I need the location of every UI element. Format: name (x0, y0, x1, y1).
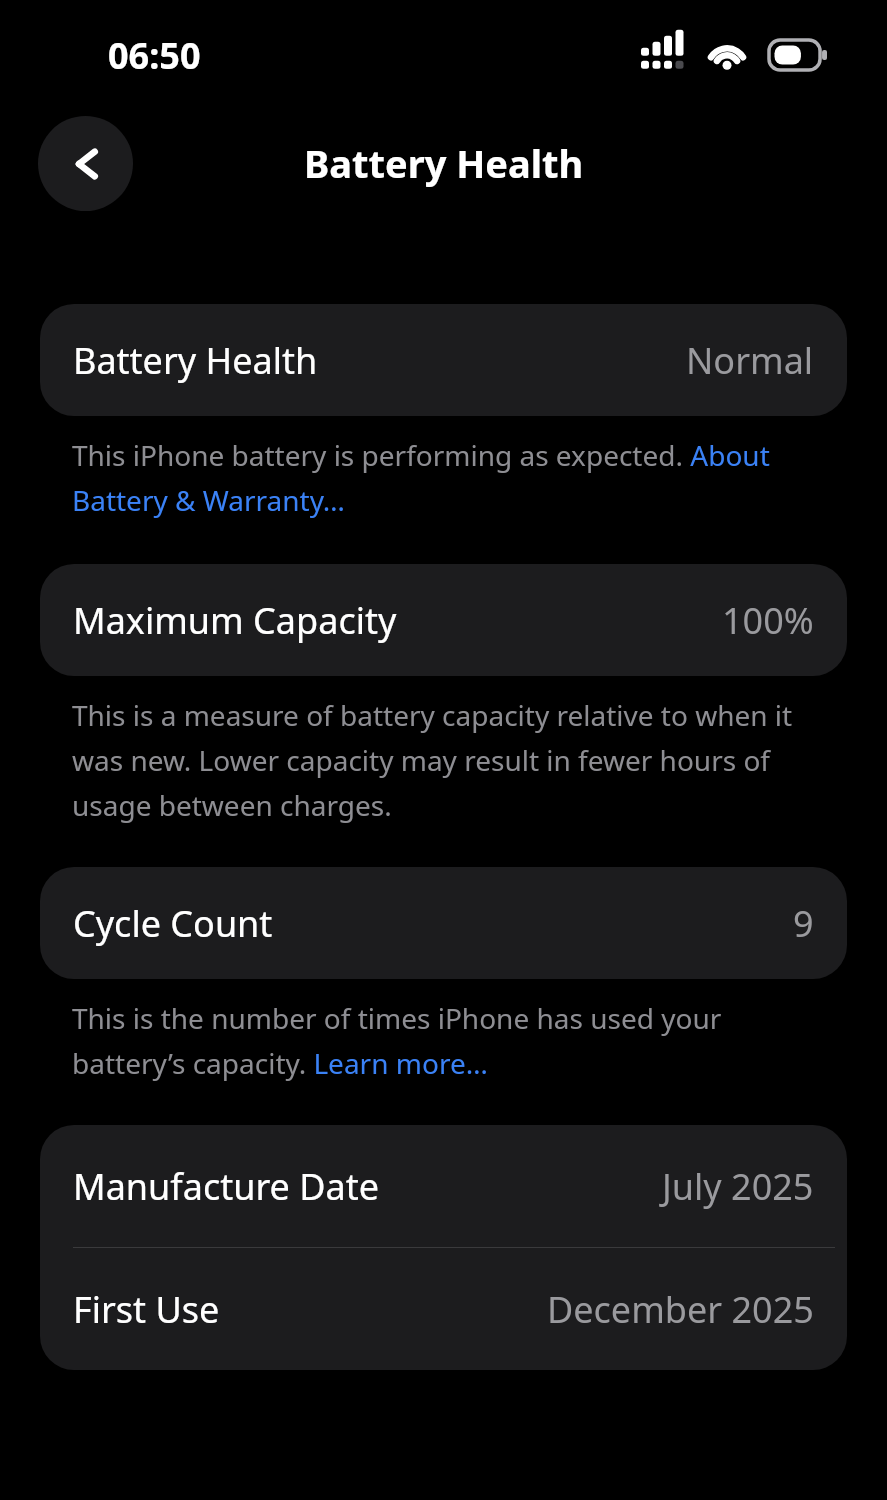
button[interactable]: Manufacture Date (40, 1125, 847, 1247)
staticText: December 2025 (547, 1285, 814, 1334)
staticText: This is a measure of battery capacity re… (72, 696, 815, 825)
staticText: Maximum Capacity (73, 596, 397, 645)
button[interactable]: Cycle Count (40, 867, 847, 979)
staticText: Cycle Count (73, 899, 273, 948)
staticText: 06:50 (108, 31, 201, 80)
staticText: Battery Health (304, 137, 584, 189)
staticText: This is the number of times iPhone has u… (72, 999, 815, 1083)
button[interactable]: Maximum Capacity (40, 564, 847, 676)
button[interactable]: Back (38, 116, 133, 211)
button[interactable]: First Use (40, 1248, 847, 1370)
staticText: Manufacture Date (73, 1162, 380, 1211)
staticText: 9 (793, 899, 814, 948)
staticText: This iPhone battery is performing as exp… (72, 436, 815, 520)
staticText: July 2025 (662, 1162, 814, 1211)
staticText: First Use (73, 1285, 220, 1334)
staticText: Battery Health (73, 336, 318, 385)
button[interactable]: Battery Health (40, 304, 847, 416)
staticText: Normal (686, 336, 814, 385)
staticText: 100% (722, 596, 814, 645)
